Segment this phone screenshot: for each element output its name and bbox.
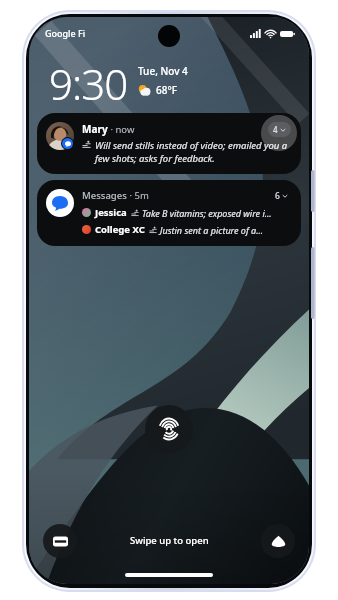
staticText: Tue, Nov 4: [138, 64, 188, 78]
staticText: · now: [108, 123, 135, 136]
button[interactable]: Wallet: [43, 524, 77, 558]
staticText: Will send stills instead of video; email…: [95, 139, 291, 165]
staticText: Justin sent a picture of a...: [160, 224, 264, 236]
staticText: Messages: [82, 189, 127, 202]
button[interactable]: Swipe up to open: [130, 534, 209, 547]
staticText: Mary: [82, 122, 108, 136]
staticText: 9:30: [49, 55, 128, 112]
button[interactable]: Mary: [37, 113, 301, 174]
staticText: 4: [273, 124, 278, 135]
staticText: Jessica: [95, 206, 127, 219]
staticText: · 5m: [127, 189, 149, 202]
staticText: 68°F: [156, 83, 177, 97]
button[interactable]: 4: [268, 122, 291, 137]
staticText: 6: [275, 190, 280, 202]
button[interactable]: Home controls: [261, 524, 295, 558]
staticText: College XC: [95, 223, 145, 236]
button[interactable]: 6: [272, 189, 291, 203]
staticText: Google Fi: [45, 27, 86, 39]
staticText: Take B vitamins; exposed wire i...: [142, 207, 272, 219]
button[interactable]: Messages: [37, 180, 301, 246]
button[interactable]: Unlock with fingerprint: [145, 405, 193, 453]
